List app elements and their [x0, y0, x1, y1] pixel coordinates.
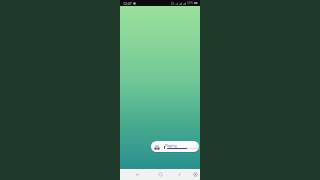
staticText: 64% [187, 1, 193, 5]
button[interactable]: Pause [161, 144, 167, 150]
button[interactable]: Assistant [190, 169, 200, 180]
button[interactable]: Back [174, 169, 184, 180]
button[interactable]: Now playing [151, 141, 199, 152]
button[interactable]: Recents [132, 169, 142, 180]
button[interactable]: Home [155, 169, 165, 180]
staticText: 12:47 [123, 1, 132, 6]
staticText: Playing [165, 143, 177, 148]
